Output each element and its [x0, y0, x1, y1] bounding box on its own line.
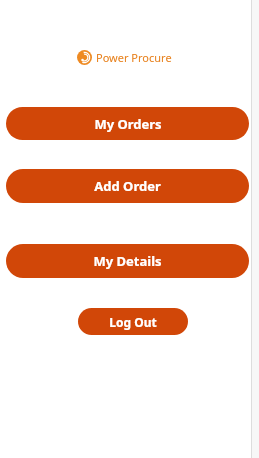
staticText: My Orders: [94, 115, 162, 133]
button[interactable]: My Details: [6, 244, 249, 278]
staticText: Log Out: [109, 314, 157, 330]
button[interactable]: Add Order: [6, 169, 249, 203]
button[interactable]: My Orders: [6, 107, 249, 140]
button[interactable]: Power Procure: [0, 50, 249, 65]
staticText: Power Procure: [96, 50, 172, 65]
staticText: My Details: [93, 252, 162, 270]
staticText: Add Order: [94, 177, 161, 195]
button[interactable]: Log Out: [78, 308, 188, 335]
